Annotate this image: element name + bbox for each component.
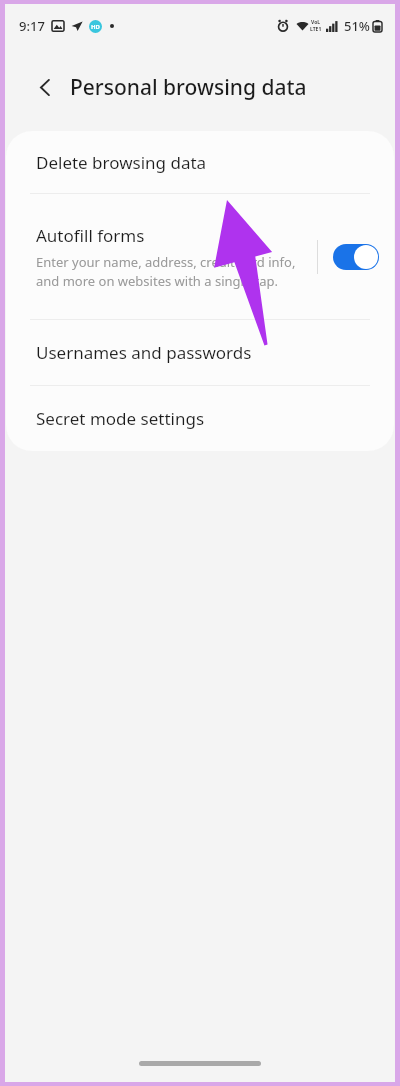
staticText: Enter your name, address, credit card in… [36, 253, 307, 290]
staticText: Secret mode settings [36, 407, 205, 430]
staticText: Personal browsing data [70, 73, 307, 102]
staticText: VoL [311, 19, 321, 26]
button[interactable]: Delete browsing data [6, 131, 394, 193]
staticText: Autofill forms [36, 224, 145, 247]
button[interactable]: Autofill forms toggle [318, 194, 394, 319]
staticText: HD [91, 23, 100, 31]
staticText: Delete browsing data [36, 151, 207, 174]
staticText: 51% [344, 17, 370, 35]
button[interactable]: Autofill forms [6, 194, 394, 319]
staticText: LTE1 [310, 26, 322, 33]
button[interactable]: Secret mode settings [6, 386, 394, 451]
button[interactable]: Back [25, 67, 65, 107]
button[interactable]: Usernames and passwords [6, 320, 394, 385]
staticText: Usernames and passwords [36, 341, 252, 364]
staticText: 9:17 [19, 17, 45, 35]
